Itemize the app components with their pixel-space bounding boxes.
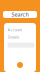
button[interactable]: Search (3, 11, 37, 18)
staticText: Search (11, 11, 28, 18)
staticText: Details (7, 34, 19, 40)
staticText: Account (7, 27, 21, 32)
button[interactable]: Continue (17, 62, 23, 68)
